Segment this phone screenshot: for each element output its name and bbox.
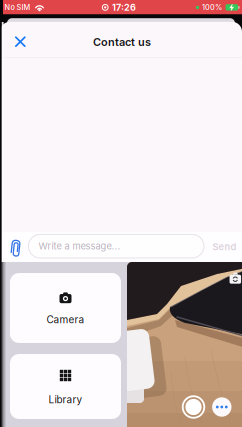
button[interactable]: Switch camera	[229, 271, 242, 284]
button[interactable]: Library	[10, 354, 121, 419]
button[interactable]: Send	[212, 241, 236, 253]
staticText: Contact us	[93, 35, 151, 49]
button[interactable]: More options	[212, 397, 231, 417]
button[interactable]: Camera	[10, 273, 121, 343]
staticText: Write a message...	[38, 241, 120, 252]
staticText: Send	[212, 241, 236, 253]
staticText: No SIM	[4, 3, 30, 12]
button[interactable]: Attach file	[4, 235, 26, 261]
button[interactable]: Take photo	[181, 395, 205, 419]
staticText: 17:26	[112, 2, 136, 13]
staticText: Library	[48, 393, 82, 406]
staticText: 100%	[202, 3, 222, 12]
button[interactable]: Close	[0, 0, 242, 427]
button[interactable]: Write a message...	[28, 234, 204, 258]
staticText: Camera	[46, 313, 84, 326]
